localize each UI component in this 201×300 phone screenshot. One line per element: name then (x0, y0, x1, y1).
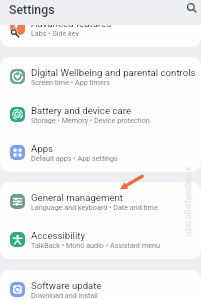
button[interactable]: Digital Wellbeing and parental controls (0, 57, 201, 95)
staticText: amageekpage.com (184, 167, 194, 237)
staticText: Screen time • App timers (31, 78, 110, 86)
button[interactable]: Advanced features (0, 8, 201, 46)
staticText: Advanced features (31, 18, 112, 29)
staticText: Battery and device care (31, 105, 132, 116)
staticText: Apps (31, 143, 54, 154)
button[interactable]: General management (0, 182, 201, 220)
staticText: TalkBack • Mono audio • Assistant menu (31, 241, 160, 249)
staticText: Labs • Side key (31, 29, 79, 37)
staticText: Accessibility (31, 230, 85, 241)
button[interactable]: Apps (0, 133, 201, 171)
staticText: Digital Wellbeing and parental controls (31, 67, 196, 78)
button[interactable]: Software update (0, 270, 201, 300)
button[interactable]: Accessibility (0, 220, 201, 258)
staticText: General management (31, 192, 124, 203)
staticText: Software update (31, 280, 102, 291)
button[interactable]: Search (180, 0, 201, 21)
staticText: Storage • Memory • Device protection (31, 116, 150, 124)
staticText: Settings (9, 3, 55, 17)
staticText: Default apps • App settings (31, 154, 118, 162)
staticText: Language and keyboard • Date and time (31, 203, 158, 211)
button[interactable]: Battery and device care (0, 95, 201, 133)
staticText: Download and install (31, 291, 98, 299)
